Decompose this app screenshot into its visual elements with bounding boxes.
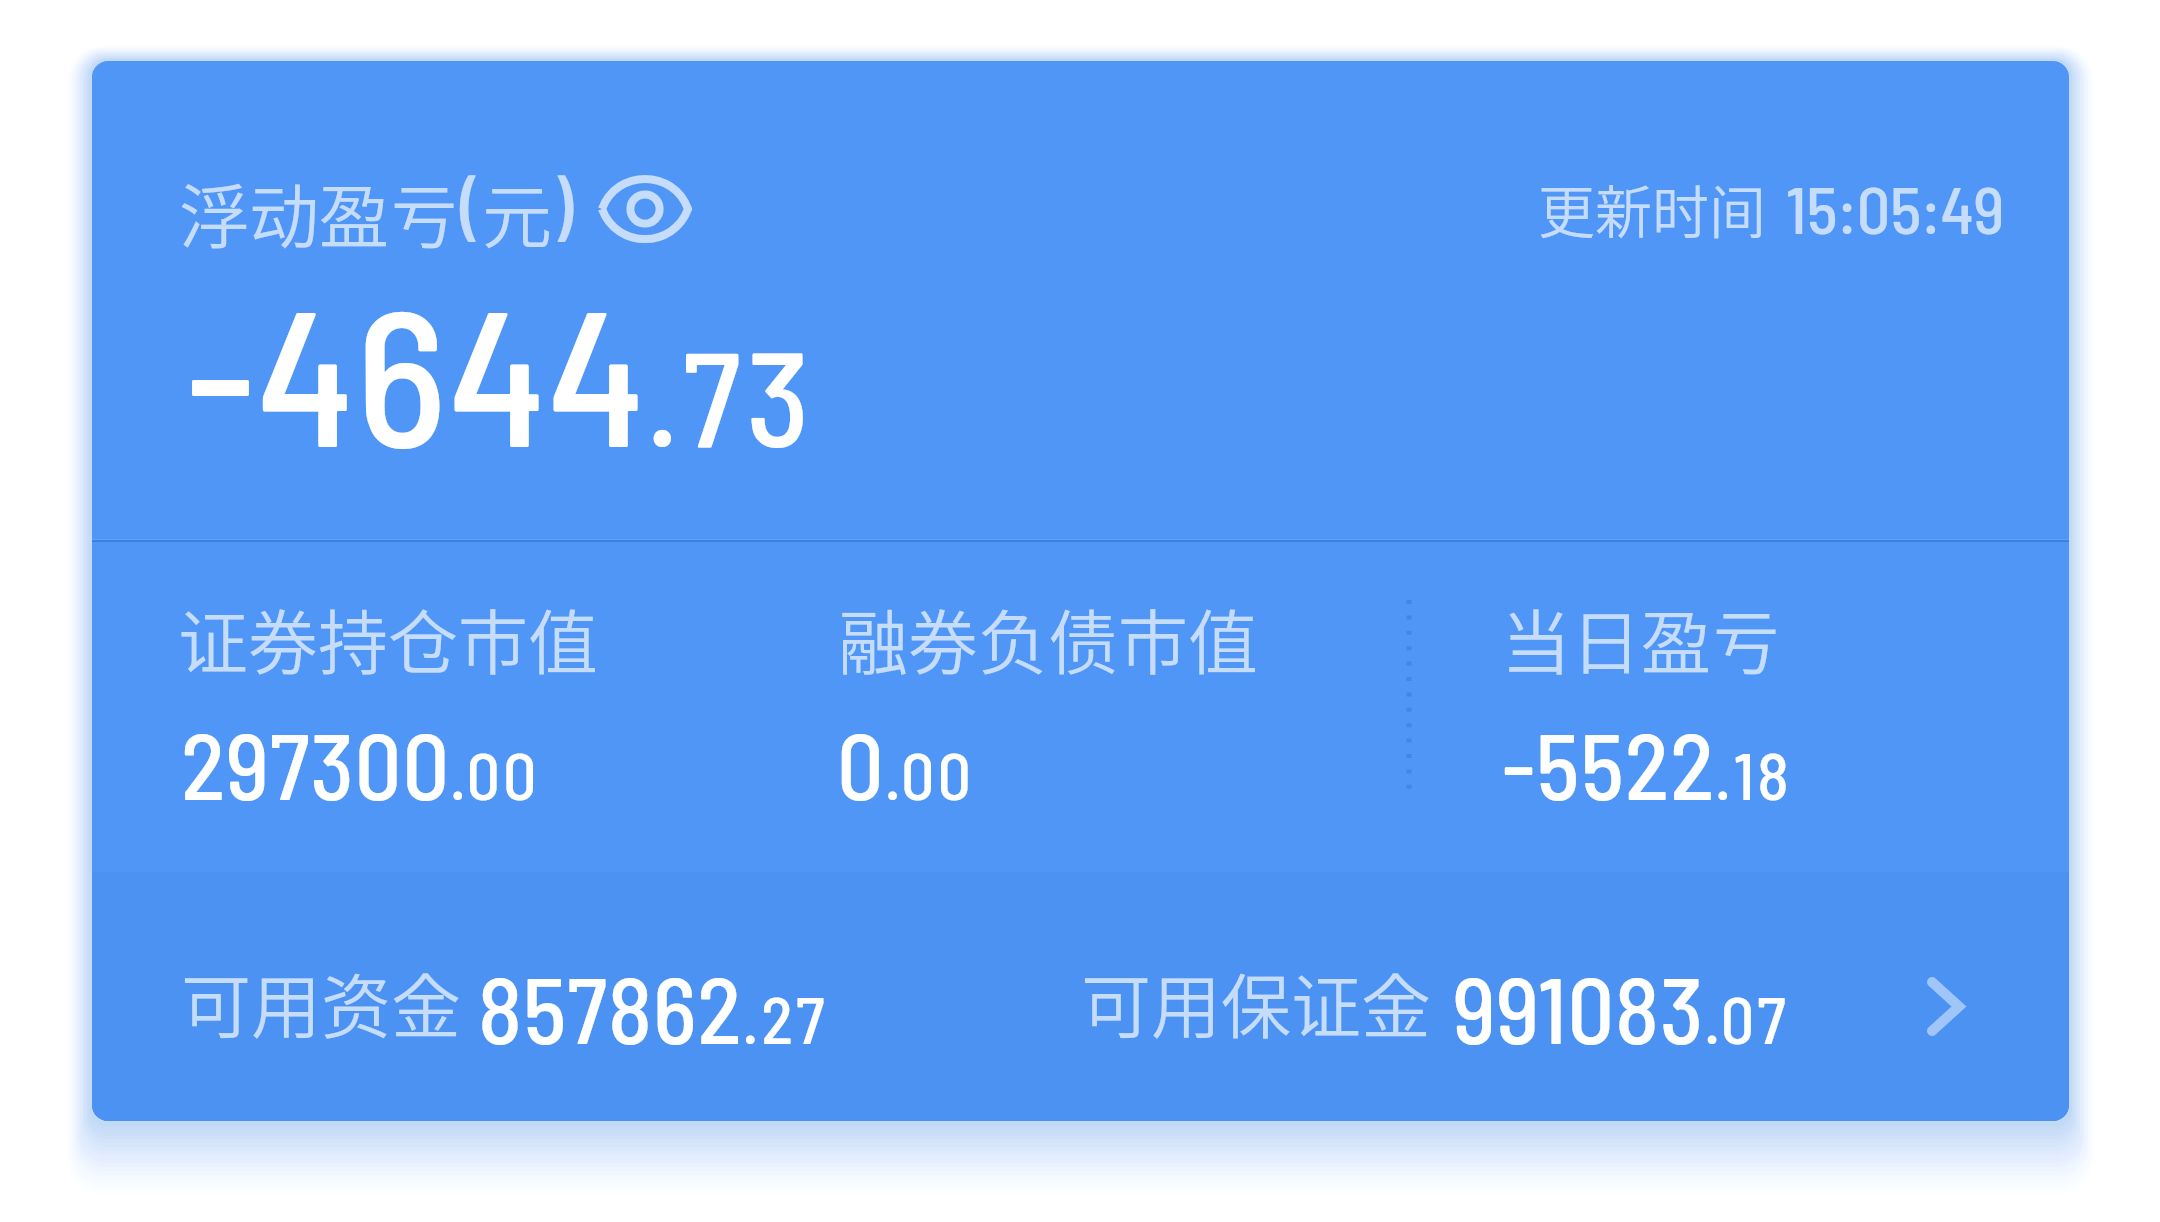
staticText: 融券负债市值 — [838, 588, 1258, 689]
staticText: 0.00 — [837, 708, 974, 818]
staticText: 元 — [482, 162, 552, 263]
staticText: 当日盈亏 — [1501, 588, 1781, 689]
button[interactable]: 可用资金 — [92, 872, 2069, 1121]
staticText: -5522.18 — [1502, 708, 1792, 818]
staticText: 可用资金 — [181, 952, 461, 1053]
staticText: -4644.73 — [186, 255, 816, 485]
staticText: ( — [460, 156, 482, 250]
other: More details — [1926, 976, 1965, 1037]
staticText: 更新时间 — [1538, 167, 1766, 250]
staticText: ) — [552, 156, 574, 250]
staticText: 991083.07 — [1453, 952, 1789, 1062]
staticText: 15:05:49 — [1786, 168, 2005, 247]
staticText: 297300.00 — [181, 708, 540, 818]
staticText: 857862.27 — [478, 952, 828, 1062]
button[interactable]: 浮动盈亏 — [92, 61, 2069, 1121]
button[interactable]: Toggle balance visibility — [598, 175, 692, 243]
staticText: 浮动盈亏 — [179, 162, 459, 263]
staticText: 可用保证金 — [1081, 952, 1431, 1053]
staticText: 证券持仓市值 — [178, 588, 598, 689]
